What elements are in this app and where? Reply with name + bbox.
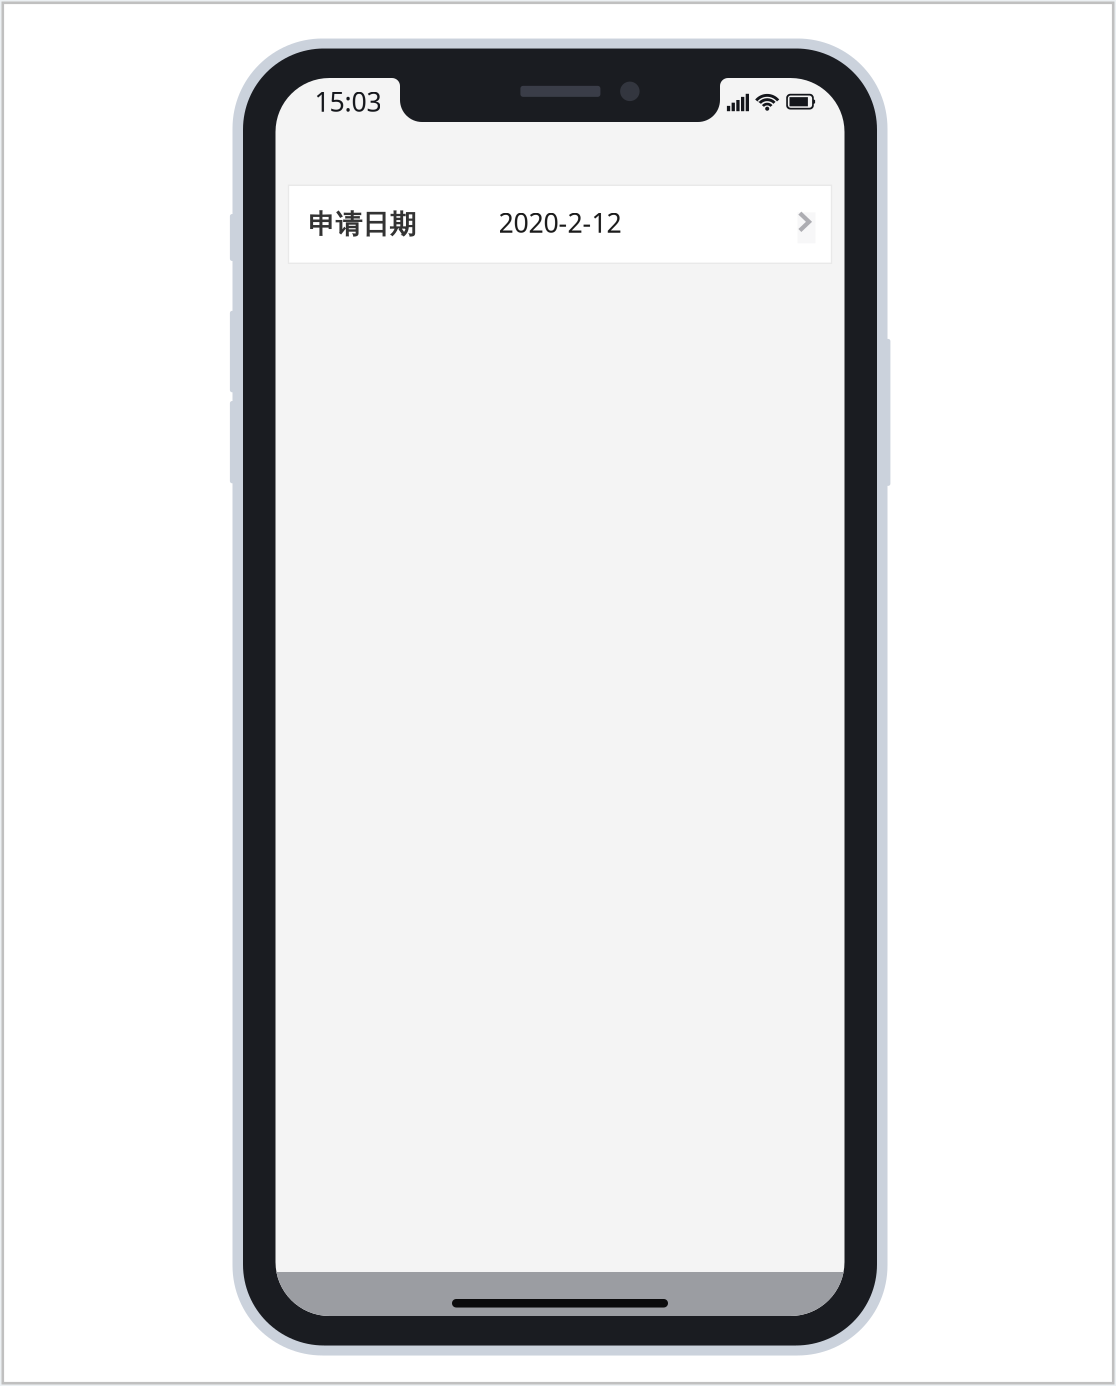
staticText: 15:03 (314, 84, 381, 119)
staticText: 2020-2-12 (498, 205, 621, 240)
button[interactable]: 申请日期 (288, 185, 831, 263)
staticText: 申请日期 (308, 208, 416, 241)
